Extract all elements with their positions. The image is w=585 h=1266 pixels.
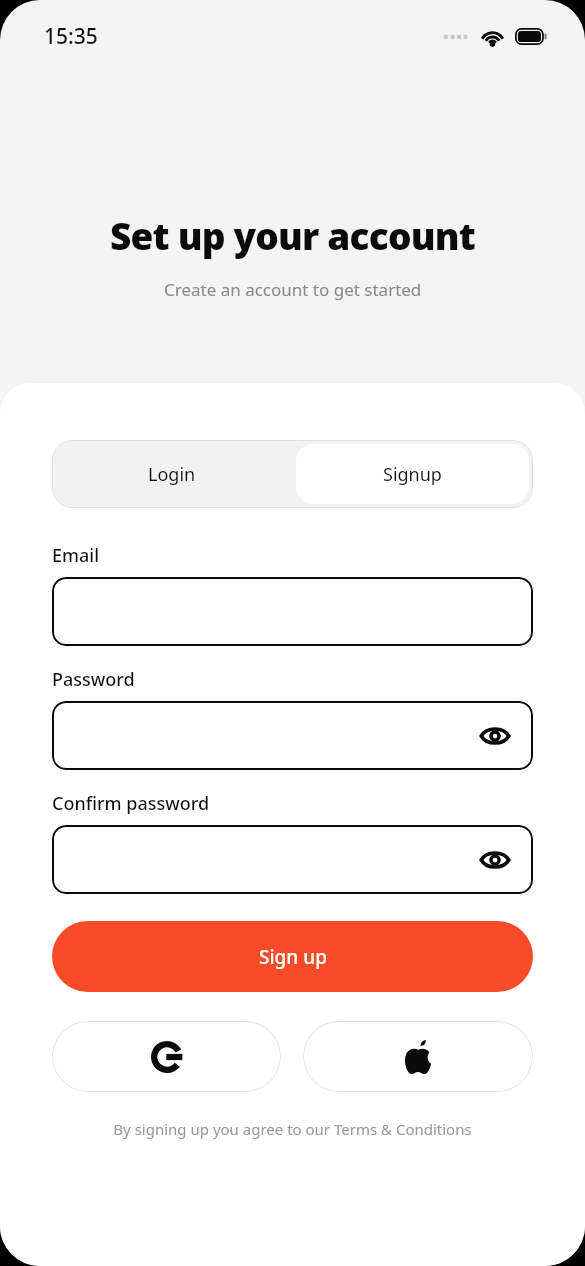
staticText: Confirm password [52, 791, 210, 816]
staticText: 15:35 [44, 22, 98, 51]
button[interactable]: Show confirm password [52, 825, 533, 894]
button[interactable]: Sign up with Google [52, 1021, 281, 1092]
button[interactable]: Sign up with Apple [303, 1021, 533, 1092]
staticText: Set up your account [110, 210, 475, 260]
button[interactable]: Show confirm password [473, 838, 517, 882]
button[interactable]: Show password [473, 714, 517, 758]
button[interactable]: Login [52, 440, 292, 508]
button[interactable]: By signing up you agree to our Terms & C… [52, 1119, 533, 1139]
button[interactable]: Signup [296, 444, 529, 504]
staticText: Signup [383, 462, 442, 487]
button[interactable] [52, 577, 533, 646]
button[interactable]: Show password [52, 701, 533, 770]
staticText: Login [148, 462, 196, 487]
button[interactable]: Sign up [52, 921, 533, 992]
staticText: Sign up [259, 944, 327, 970]
staticText: Create an account to get started [164, 278, 422, 301]
staticText: Password [52, 667, 135, 692]
staticText: Email [52, 543, 100, 568]
